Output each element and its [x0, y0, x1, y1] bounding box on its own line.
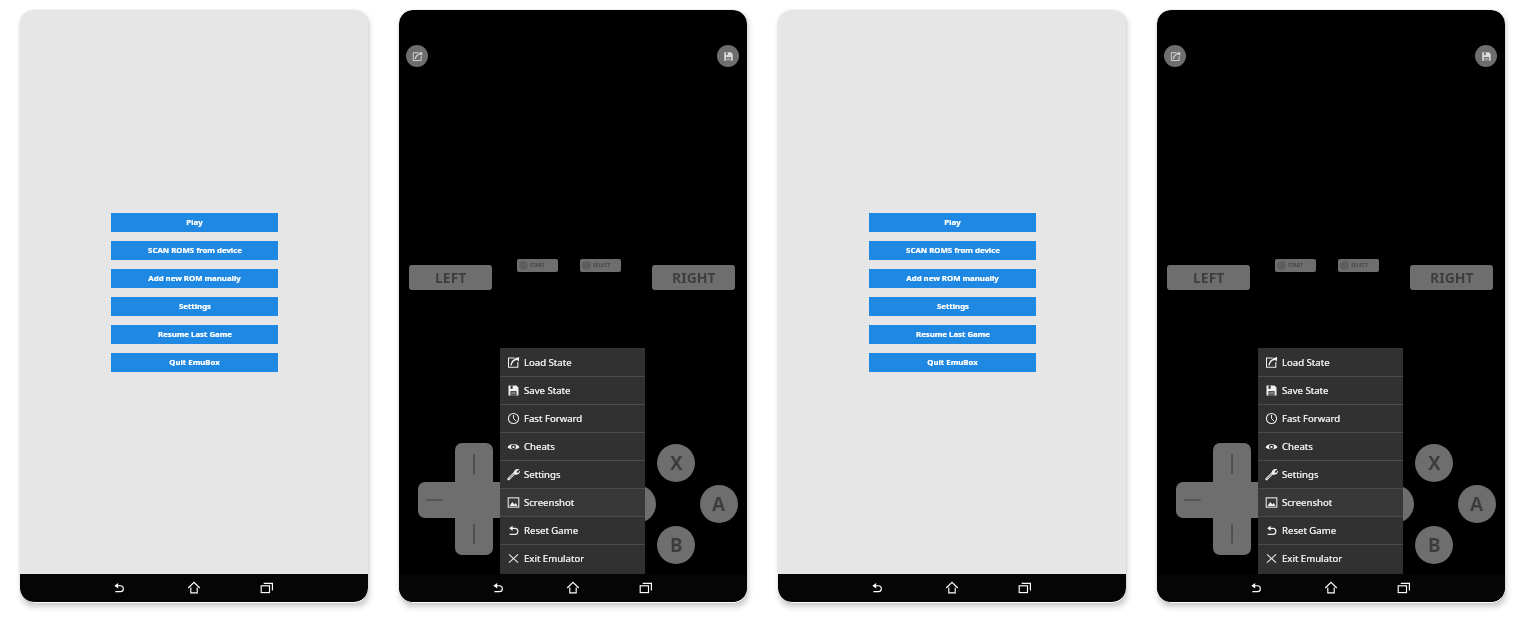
button[interactable]: Save State [1258, 376, 1403, 404]
button[interactable]: B [1415, 526, 1453, 564]
button[interactable]: Exit Emulator [1258, 544, 1403, 572]
button[interactable]: Save State [500, 376, 645, 404]
staticText: Cheats [1282, 440, 1313, 453]
button[interactable]: A [1458, 485, 1496, 523]
button[interactable]: Reset Game [1258, 516, 1403, 544]
staticText: Settings [524, 468, 561, 481]
button[interactable]: Recents [250, 574, 284, 602]
button[interactable]: Add new ROM manually [111, 269, 278, 288]
button[interactable]: SELECT [580, 259, 621, 272]
staticText: Exit Emulator [524, 552, 585, 565]
button[interactable]: Fast Forward [500, 404, 645, 432]
staticText: Reset Game [524, 524, 579, 537]
button[interactable]: Settings [1258, 460, 1403, 488]
button[interactable]: Recents [1008, 574, 1042, 602]
button[interactable]: D-pad up down [455, 443, 493, 555]
button[interactable]: Recents [1387, 574, 1421, 602]
staticText: Screenshot [524, 496, 575, 509]
staticText: B [1428, 532, 1441, 558]
button[interactable]: X [657, 444, 695, 482]
button[interactable]: Save State [1475, 45, 1497, 67]
staticText: Fast Forward [1282, 412, 1341, 425]
button[interactable]: Load State [500, 348, 645, 376]
staticText: Fast Forward [524, 412, 583, 425]
button[interactable]: Screenshot [500, 488, 645, 516]
button[interactable]: B [657, 526, 695, 564]
staticText: Settings [937, 301, 969, 312]
button[interactable]: RIGHT [1410, 265, 1493, 290]
staticText: Resume Last Game [158, 329, 232, 340]
button[interactable]: Fast Forward [1258, 404, 1403, 432]
button[interactable]: START [1275, 259, 1316, 272]
button[interactable]: Y [618, 485, 656, 523]
staticText: Screenshot [1282, 496, 1333, 509]
button[interactable]: Reset Game [500, 516, 645, 544]
staticText: B [670, 532, 683, 558]
staticText: SCAN ROMS from device [148, 245, 242, 256]
staticText: Y [1389, 491, 1401, 517]
staticText: START [530, 262, 545, 269]
staticText: SELECT [593, 262, 611, 269]
button[interactable]: LEFT [409, 265, 492, 290]
button[interactable]: X [1415, 444, 1453, 482]
button[interactable]: SCAN ROMS from device [111, 241, 278, 260]
button[interactable]: Load State [1258, 348, 1403, 376]
button[interactable]: Load State [406, 45, 428, 67]
button[interactable]: SCAN ROMS from device [869, 241, 1036, 260]
button[interactable]: Quit EmuBox [869, 353, 1036, 372]
button[interactable]: Back [102, 574, 136, 602]
button[interactable]: RIGHT [652, 265, 735, 290]
button[interactable]: Load State [1164, 45, 1186, 67]
button[interactable]: Home [556, 574, 590, 602]
button[interactable]: A [700, 485, 738, 523]
staticText: Add new ROM manually [148, 273, 241, 284]
staticText: X [1428, 450, 1441, 476]
staticText: RIGHT [1430, 268, 1474, 287]
button[interactable]: Screenshot [1258, 488, 1403, 516]
button[interactable]: D-pad up down [1213, 443, 1251, 555]
button[interactable]: Add new ROM manually [869, 269, 1036, 288]
staticText: LEFT [1193, 268, 1225, 287]
button[interactable]: Resume Last Game [111, 325, 278, 344]
button[interactable]: D-pad left right [418, 482, 530, 518]
staticText: Y [631, 491, 643, 517]
staticText: LEFT [435, 268, 467, 287]
button[interactable]: Exit Emulator [500, 544, 645, 572]
button[interactable]: Recents [629, 574, 663, 602]
staticText: A [712, 491, 726, 517]
button[interactable]: Home [1314, 574, 1348, 602]
staticText: START [1288, 262, 1303, 269]
button[interactable]: Play [111, 213, 278, 232]
staticText: RIGHT [672, 268, 716, 287]
button[interactable]: Resume Last Game [869, 325, 1036, 344]
button[interactable]: Save State [717, 45, 739, 67]
staticText: Cheats [524, 440, 555, 453]
staticText: Resume Last Game [916, 329, 990, 340]
button[interactable]: START [517, 259, 558, 272]
button[interactable]: Back [1239, 574, 1273, 602]
button[interactable]: Settings [500, 460, 645, 488]
button[interactable]: Y [1376, 485, 1414, 523]
staticText: Reset Game [1282, 524, 1337, 537]
button[interactable]: Settings [869, 297, 1036, 316]
staticText: Quit EmuBox [169, 357, 220, 368]
button[interactable]: Home [935, 574, 969, 602]
button[interactable]: Settings [111, 297, 278, 316]
button[interactable]: Quit EmuBox [111, 353, 278, 372]
staticText: A [1470, 491, 1484, 517]
staticText: Save State [524, 384, 571, 397]
staticText: Save State [1282, 384, 1329, 397]
button[interactable]: Play [869, 213, 1036, 232]
button[interactable]: Back [860, 574, 894, 602]
staticText: Exit Emulator [1282, 552, 1343, 565]
staticText: Play [186, 217, 203, 228]
staticText: Settings [179, 301, 211, 312]
button[interactable]: Back [481, 574, 515, 602]
button[interactable]: SELECT [1338, 259, 1379, 272]
button[interactable]: Cheats [1258, 432, 1403, 460]
staticText: Load State [1282, 356, 1330, 369]
button[interactable]: Cheats [500, 432, 645, 460]
button[interactable]: LEFT [1167, 265, 1250, 290]
button[interactable]: Home [177, 574, 211, 602]
button[interactable]: D-pad left right [1176, 482, 1288, 518]
